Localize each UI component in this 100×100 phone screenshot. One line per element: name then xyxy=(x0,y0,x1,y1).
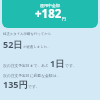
staticText: です。 xyxy=(28,84,40,89)
staticText: が経過しました。 xyxy=(23,45,51,49)
staticText: 純正スタイル診断を行ってから xyxy=(3,32,52,36)
staticText: 1日 xyxy=(50,57,65,69)
staticText: です。 xyxy=(65,63,77,68)
staticText: 次の注文予定日まで、あと xyxy=(3,63,50,68)
staticText: 円 xyxy=(62,16,66,21)
staticText: 135円 xyxy=(3,78,28,90)
staticText: +182 xyxy=(35,6,62,22)
staticText: 52日 xyxy=(3,38,23,50)
staticText: 次の注文予定日に必要な金額は、 xyxy=(3,73,61,78)
staticText: 運用中金額 xyxy=(40,3,60,8)
button[interactable]: 運用中金額 xyxy=(2,0,98,28)
